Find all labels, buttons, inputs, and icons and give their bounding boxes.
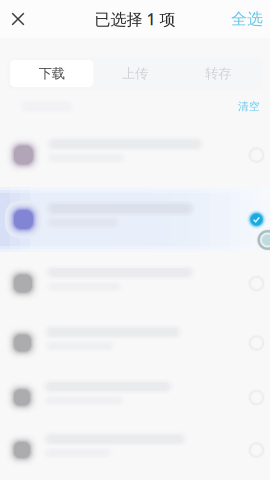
button[interactable] <box>0 371 270 424</box>
button[interactable] <box>0 424 270 476</box>
button[interactable]: 关闭 <box>0 0 36 38</box>
staticText: 全选 <box>231 9 263 29</box>
staticText: 已选择 1 项 <box>94 8 175 30</box>
staticText: 下载 <box>39 65 65 82</box>
button[interactable] <box>0 187 270 252</box>
staticText: 上传 <box>122 65 148 82</box>
button[interactable]: 上传 <box>93 60 177 87</box>
staticText: 转存 <box>205 65 231 82</box>
button[interactable]: 清空 <box>238 100 270 113</box>
button[interactable] <box>0 315 270 371</box>
button[interactable] <box>0 123 270 187</box>
button[interactable]: 全选 <box>224 0 270 38</box>
staticText: 清空 <box>238 100 260 113</box>
button[interactable]: 转存 <box>177 60 260 87</box>
button[interactable] <box>0 252 270 315</box>
button[interactable]: 下载 <box>10 60 93 87</box>
